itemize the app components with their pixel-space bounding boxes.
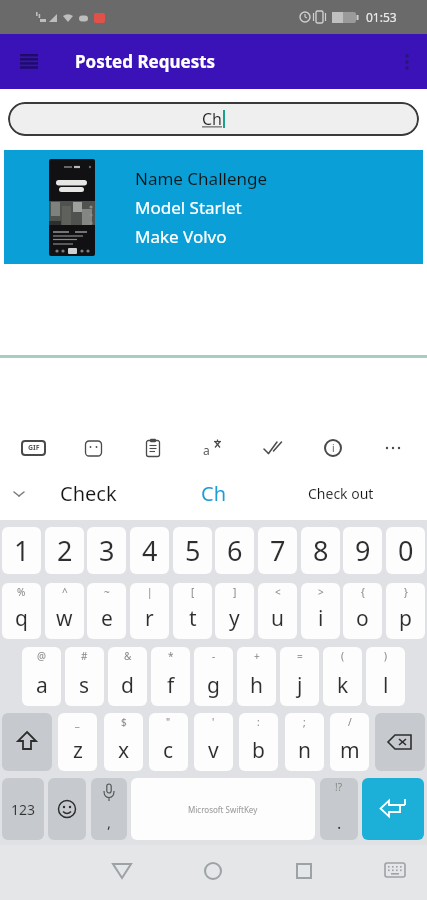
staticText: ( [341,649,344,663]
staticText: : [257,715,260,729]
button[interactable]: ( [323,647,362,706]
button[interactable]: - [194,647,233,706]
button[interactable]: + [237,647,276,706]
button[interactable]: Check out [308,484,374,503]
button[interactable]: i [312,429,354,467]
staticText: c [163,736,174,765]
button[interactable]: / [330,713,369,771]
button[interactable]: } [386,583,425,639]
button[interactable]: = [280,647,319,706]
button[interactable]: Microsoft SwiftKey [131,778,315,840]
button[interactable] [385,863,405,878]
button[interactable]: @ [22,647,61,706]
staticText: s [79,671,90,700]
button[interactable] [375,713,425,771]
button[interactable]: $ [104,713,143,771]
staticText: g [207,671,220,700]
staticText: m [340,736,360,765]
staticText: p [399,604,412,633]
button[interactable] [112,862,132,880]
button[interactable]: * [151,647,190,706]
button[interactable]: 2 [45,527,84,574]
button[interactable]: ; [285,713,324,771]
staticText: z [73,736,83,765]
button[interactable]: 4 [130,527,169,574]
staticText: ' [212,715,215,729]
staticText: " [166,715,171,729]
button[interactable] [2,713,52,771]
staticText: , [107,812,112,832]
staticText: $ [121,715,127,729]
button[interactable]: !? [320,778,358,840]
button[interactable]: ^ [45,583,84,639]
staticText: # [81,649,88,663]
button[interactable] [405,54,409,70]
button[interactable]: 3 [87,527,126,574]
button[interactable]: ' [194,713,233,771]
staticText: n [298,736,311,765]
staticText: 3 [99,532,115,569]
button[interactable]: 9 [343,527,382,574]
staticText: x [118,736,130,765]
button[interactable]: & [108,647,147,706]
button[interactable]: ) [366,647,405,706]
button[interactable] [296,863,312,879]
staticText: < [275,585,281,599]
staticText: > [318,585,324,599]
button[interactable]: GIF [12,429,54,467]
button[interactable]: _ [58,713,97,771]
button[interactable] [72,429,114,467]
staticText: _ [75,715,80,729]
button[interactable]: | [130,583,169,639]
staticText: 123 [11,800,36,819]
button[interactable]: Check [60,480,117,507]
button[interactable]: > [301,583,340,639]
staticText: Ch [202,108,223,130]
button[interactable] [362,778,424,840]
button[interactable]: ~ [87,583,126,639]
button[interactable]: { [343,583,382,639]
staticText: i [332,441,335,455]
button[interactable]: < [258,583,297,639]
button[interactable] [204,862,222,880]
staticText: j [297,671,303,700]
button[interactable]: # [65,647,104,706]
staticText: o [356,604,369,633]
button[interactable]: , [91,778,127,840]
button[interactable] [252,429,294,467]
button[interactable]: 0 [386,527,425,574]
staticText: h [250,671,263,700]
staticText: % [17,585,26,599]
staticText: [ [191,585,195,599]
button[interactable]: a [192,429,234,467]
button[interactable]: ] [215,583,254,639]
button[interactable] [372,429,414,467]
button[interactable]: 6 [215,527,254,574]
staticText: 0 [398,532,414,569]
button[interactable]: 8 [301,527,340,574]
staticText: b [252,736,265,765]
button[interactable]: 7 [258,527,297,574]
staticText: Posted Requests [75,50,216,73]
button[interactable]: Name Challenge [4,150,423,264]
staticText: e [101,604,113,633]
button[interactable]: Ch [201,480,226,507]
button[interactable]: [ [173,583,212,639]
staticText: 4 [142,532,158,569]
button[interactable] [132,429,174,467]
button[interactable]: 1 [2,527,41,574]
button[interactable]: : [239,713,278,771]
button[interactable]: 5 [173,527,212,574]
staticText: 2 [57,532,73,569]
staticText: = [297,649,303,663]
button[interactable] [13,489,25,499]
button[interactable]: 123 [2,778,44,840]
staticText: ~ [104,585,110,599]
button[interactable] [48,778,86,840]
button[interactable] [20,54,38,69]
button[interactable]: % [2,583,41,639]
staticText: | [147,585,153,599]
button[interactable]: Ch [8,102,419,136]
staticText: { [361,585,365,599]
button[interactable]: " [149,713,188,771]
